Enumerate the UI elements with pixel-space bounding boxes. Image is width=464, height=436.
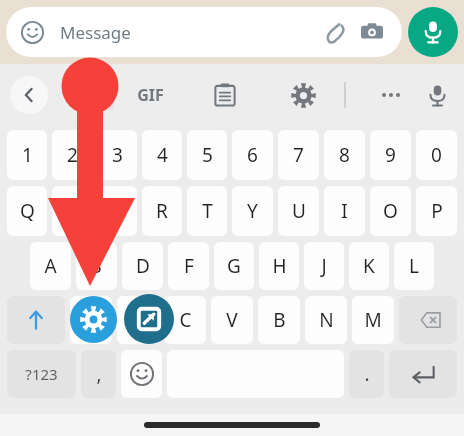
staticText: L xyxy=(409,253,419,279)
staticText: ?123 xyxy=(25,364,58,384)
button[interactable]: Emoji xyxy=(18,18,46,46)
button[interactable]: W xyxy=(52,186,92,236)
button[interactable]: Keyboard settings highlight xyxy=(70,296,117,343)
button[interactable]: Back xyxy=(10,76,48,114)
button[interactable]: Enter xyxy=(389,350,457,398)
staticText: D xyxy=(136,253,150,279)
button[interactable]: 1 xyxy=(7,130,47,180)
button[interactable]: 3 xyxy=(97,130,137,180)
staticText: X xyxy=(132,307,144,333)
button[interactable]: I xyxy=(324,186,365,236)
button[interactable]: 4 xyxy=(142,130,182,180)
staticText: C xyxy=(179,307,192,333)
button[interactable]: T xyxy=(187,186,227,236)
button[interactable]: 0 xyxy=(416,130,457,180)
staticText: J xyxy=(321,253,327,279)
button[interactable]: B xyxy=(258,296,300,344)
button[interactable]: Emoji xyxy=(6,7,402,57)
button[interactable]: S xyxy=(76,242,117,290)
staticText: 0 xyxy=(431,142,442,168)
staticText: U xyxy=(292,198,306,224)
staticText: Z xyxy=(86,307,97,333)
button[interactable]: Settings xyxy=(280,72,326,118)
button[interactable]: 7 xyxy=(278,130,319,180)
button[interactable]: G xyxy=(214,242,254,290)
staticText: E xyxy=(112,198,123,224)
staticText: S xyxy=(91,253,102,279)
button[interactable]: R xyxy=(142,186,182,236)
button[interactable]: A xyxy=(30,242,71,290)
button[interactable]: J xyxy=(304,242,344,290)
button[interactable]: Resize keyboard highlight xyxy=(124,294,174,344)
staticText: Message xyxy=(60,21,318,44)
staticText: I xyxy=(341,198,348,224)
staticText: 4 xyxy=(157,142,168,168)
button[interactable]: Attach xyxy=(318,14,354,50)
staticText: V xyxy=(226,307,238,333)
button[interactable]: X xyxy=(117,296,159,344)
button[interactable]: L xyxy=(394,242,434,290)
button[interactable]: 9 xyxy=(370,130,411,180)
staticText: P xyxy=(431,198,443,224)
staticText: 9 xyxy=(385,142,396,168)
button[interactable]: 6 xyxy=(232,130,273,180)
staticText: K xyxy=(363,253,375,279)
staticText: 8 xyxy=(339,142,350,168)
button[interactable]: Z xyxy=(70,296,112,344)
staticText: 6 xyxy=(247,142,258,168)
button[interactable]: D xyxy=(122,242,163,290)
staticText: 7 xyxy=(293,142,304,168)
button[interactable]: Stickers xyxy=(76,72,122,118)
button[interactable]: , xyxy=(81,350,116,398)
button[interactable]: GIF xyxy=(130,72,170,118)
button[interactable]: E xyxy=(97,186,137,236)
staticText: A xyxy=(44,253,57,279)
button[interactable]: U xyxy=(278,186,319,236)
button[interactable]: ?123 xyxy=(7,350,76,398)
button[interactable]: Voice message xyxy=(408,7,458,57)
button[interactable]: Emoji xyxy=(121,350,162,398)
staticText: 2 xyxy=(67,142,78,168)
button[interactable]: 2 xyxy=(52,130,92,180)
staticText: O xyxy=(383,198,398,224)
staticText: N xyxy=(319,307,334,333)
button[interactable]: F xyxy=(168,242,209,290)
staticText: Q xyxy=(20,198,35,224)
staticText: 1 xyxy=(22,142,33,168)
staticText: , xyxy=(96,361,102,387)
button[interactable]: . xyxy=(349,350,384,398)
staticText: R xyxy=(156,198,168,224)
staticText: M xyxy=(364,307,382,333)
staticText: . xyxy=(364,361,370,387)
button[interactable]: Clipboard xyxy=(202,72,248,118)
button[interactable]: Voice input xyxy=(414,72,460,118)
staticText: Y xyxy=(247,198,258,224)
button[interactable]: N xyxy=(305,296,347,344)
button[interactable]: K xyxy=(349,242,389,290)
button[interactable]: O xyxy=(370,186,411,236)
staticText: T xyxy=(202,198,213,224)
staticText: 3 xyxy=(112,142,123,168)
button[interactable]: M xyxy=(352,296,394,344)
button[interactable]: Camera xyxy=(354,14,390,50)
button[interactable]: V xyxy=(211,296,253,344)
staticText: G xyxy=(227,253,241,279)
staticText: H xyxy=(272,253,287,279)
button[interactable]: P xyxy=(416,186,457,236)
button[interactable]: 8 xyxy=(324,130,365,180)
button[interactable]: Shift xyxy=(7,296,65,344)
button[interactable]: Q xyxy=(7,186,47,236)
staticText: 5 xyxy=(202,142,213,168)
staticText: B xyxy=(273,307,286,333)
staticText: F xyxy=(184,253,194,279)
button[interactable]: Y xyxy=(232,186,273,236)
button[interactable]: H xyxy=(259,242,299,290)
staticText: GIF xyxy=(137,84,164,106)
button[interactable]: C xyxy=(164,296,206,344)
button[interactable]: More options xyxy=(368,72,414,118)
button[interactable]: 5 xyxy=(187,130,227,180)
button[interactable]: Backspace xyxy=(399,296,457,344)
